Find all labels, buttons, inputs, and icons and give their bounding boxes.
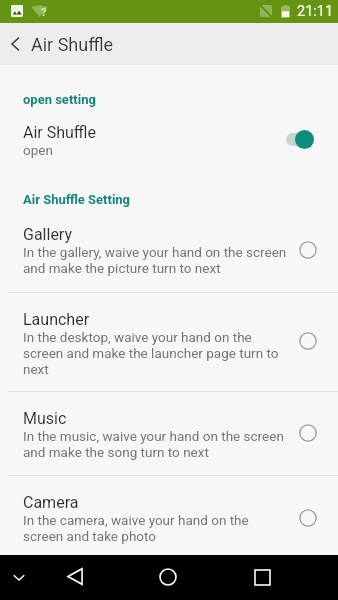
staticText: Air Shuffle: [23, 123, 96, 142]
button[interactable]: Camera: [0, 484, 338, 549]
staticText: open setting: [23, 92, 96, 107]
button[interactable]: Back: [51, 555, 99, 600]
button[interactable]: Air Shuffle Setting: [0, 192, 338, 207]
button[interactable]: Gallery: [0, 216, 338, 282]
staticText: In the gallery, waive your hand on the s…: [23, 244, 287, 276]
staticText: In the camera, waive your hand on the sc…: [23, 512, 249, 544]
staticText: In the music, waive your hand on the scr…: [23, 428, 284, 460]
staticText: Music: [23, 409, 67, 428]
staticText: In the desktop, waive your hand on the s…: [23, 329, 279, 377]
staticText: Gallery: [23, 225, 72, 244]
button[interactable]: Recent apps: [238, 555, 286, 600]
button[interactable]: Air Shuffle: [0, 114, 338, 166]
staticText: open: [23, 142, 53, 158]
button[interactable]: Music: [0, 400, 338, 465]
button[interactable]: open setting: [0, 92, 338, 107]
staticText: Camera: [23, 493, 79, 512]
staticText: ?: [41, 6, 47, 19]
button[interactable]: Hide keyboard: [0, 555, 41, 600]
button[interactable]: Launcher: [0, 301, 338, 382]
button[interactable]: Home: [144, 555, 192, 600]
staticText: Air Shuffle: [31, 34, 114, 55]
staticText: Launcher: [23, 310, 90, 329]
button[interactable]: Navigate up: [0, 23, 30, 65]
staticText: Air Shuffle Setting: [23, 192, 131, 207]
staticText: 21:11: [297, 3, 334, 20]
